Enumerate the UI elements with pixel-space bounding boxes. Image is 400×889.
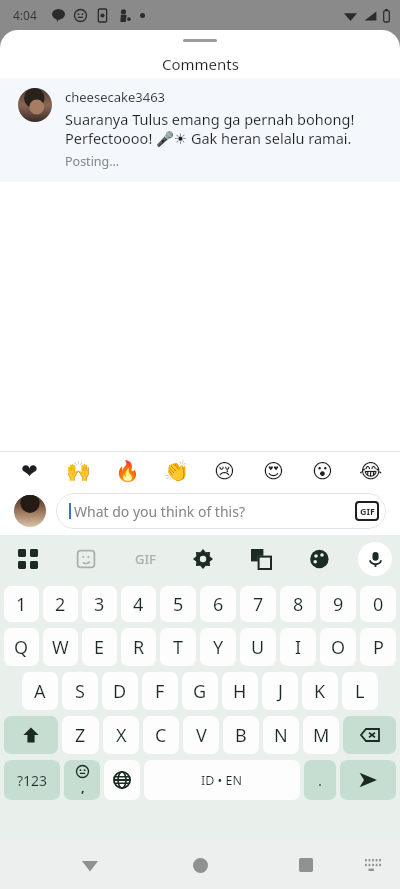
button[interactable]: Backspace xyxy=(343,716,396,754)
button[interactable]: Voice input xyxy=(358,542,392,576)
button[interactable]: P xyxy=(360,628,396,666)
staticText: ❤️ xyxy=(21,459,38,482)
staticText: D xyxy=(113,679,127,704)
button[interactable]: 2 xyxy=(43,586,78,622)
button[interactable]: O xyxy=(320,628,356,666)
button[interactable]: Apps xyxy=(8,539,48,579)
staticText: 7 xyxy=(253,592,264,617)
button[interactable]: 🔥 xyxy=(110,453,144,487)
staticText: F xyxy=(155,679,165,704)
button[interactable]: Emoji and comma xyxy=(64,760,100,800)
staticText: Y xyxy=(213,635,224,660)
button[interactable]: 6 xyxy=(200,586,236,622)
button[interactable]: Stickers xyxy=(66,539,106,579)
staticText: 🔥 xyxy=(115,459,140,482)
button[interactable]: Q xyxy=(4,628,39,666)
staticText: . xyxy=(318,770,323,790)
staticText: 2 xyxy=(55,592,66,617)
staticText: E xyxy=(94,635,105,660)
button[interactable]: Change language xyxy=(104,760,140,800)
button[interactable]: B xyxy=(223,716,259,754)
button[interactable]: F xyxy=(142,672,178,710)
staticText: 😂 xyxy=(359,459,383,482)
button[interactable]: Send xyxy=(340,760,396,800)
button[interactable]: 3 xyxy=(82,586,117,622)
staticText: U xyxy=(251,635,265,660)
button[interactable]: Home xyxy=(180,845,220,885)
button[interactable]: K xyxy=(302,672,338,710)
button[interactable]: C xyxy=(143,716,179,754)
staticText: Comments xyxy=(162,54,239,74)
button[interactable]: GIF xyxy=(125,539,165,579)
staticText: O xyxy=(331,635,346,660)
button[interactable]: Recents xyxy=(286,845,326,885)
staticText: 5 xyxy=(173,592,184,617)
button[interactable]: 0 xyxy=(360,586,396,622)
button[interactable]: GIF xyxy=(355,501,379,521)
staticText: M xyxy=(313,723,330,748)
button[interactable]: J xyxy=(262,672,298,710)
button[interactable]: U xyxy=(240,628,276,666)
staticText: W xyxy=(52,635,69,660)
button[interactable]: 😮 xyxy=(305,453,339,487)
button[interactable]: I xyxy=(280,628,316,666)
staticText: 4 xyxy=(133,592,144,617)
staticText: 6 xyxy=(213,592,224,617)
staticText: , xyxy=(81,778,85,796)
button[interactable]: 7 xyxy=(240,586,276,622)
button[interactable]: 😂 xyxy=(354,453,388,487)
button[interactable]: 😍 xyxy=(256,453,290,487)
button[interactable]: 🙌 xyxy=(61,453,95,487)
button[interactable]: 4 xyxy=(121,586,156,622)
button[interactable]: Shift xyxy=(4,716,58,754)
staticText: S xyxy=(75,679,85,704)
button[interactable]: ?123 xyxy=(4,760,60,800)
button[interactable]: 😢 xyxy=(207,453,241,487)
button[interactable]: Y xyxy=(200,628,236,666)
button[interactable]: Settings xyxy=(183,539,223,579)
button[interactable]: D xyxy=(102,672,138,710)
staticText: A xyxy=(34,679,46,704)
button[interactable]: Back xyxy=(70,845,110,885)
button[interactable]: Theme xyxy=(300,539,340,579)
button[interactable]: X xyxy=(103,716,139,754)
button[interactable]: S xyxy=(62,672,98,710)
button[interactable]: L xyxy=(342,672,378,710)
button[interactable]: 8 xyxy=(280,586,316,622)
button[interactable]: cheesecake3463 xyxy=(0,78,400,182)
button[interactable]: G xyxy=(182,672,218,710)
button[interactable]: ❤️ xyxy=(12,453,46,487)
button[interactable]: What do you think of this? xyxy=(56,493,386,529)
staticText: Z xyxy=(75,723,86,748)
button[interactable]: Z xyxy=(62,716,99,754)
button[interactable]: A xyxy=(22,672,58,710)
staticText: P xyxy=(373,635,384,660)
button[interactable]: 👏 xyxy=(159,453,193,487)
staticText: K xyxy=(314,679,326,704)
staticText: ?123 xyxy=(17,771,48,790)
button[interactable]: 9 xyxy=(320,586,356,622)
button[interactable]: 1 xyxy=(4,586,39,622)
button[interactable]: ID • EN xyxy=(144,760,300,800)
button[interactable]: R xyxy=(121,628,156,666)
staticText: Posting… xyxy=(65,153,120,170)
staticText: GIF xyxy=(135,550,156,568)
staticText: L xyxy=(355,679,365,704)
button[interactable]: T xyxy=(160,628,196,666)
button[interactable]: H xyxy=(222,672,258,710)
button[interactable]: M xyxy=(303,716,339,754)
staticText: 🙌 xyxy=(66,459,91,482)
button[interactable]: W xyxy=(43,628,78,666)
staticText: I xyxy=(295,635,302,660)
button[interactable]: V xyxy=(183,716,219,754)
staticText: H xyxy=(233,679,247,704)
button[interactable]: 5 xyxy=(160,586,196,622)
button[interactable]: Translate xyxy=(241,539,281,579)
button[interactable]: Switch keyboard xyxy=(358,850,388,880)
button[interactable]: . xyxy=(304,760,336,800)
button[interactable]: E xyxy=(82,628,117,666)
staticText: GIF xyxy=(360,505,375,517)
button[interactable]: N xyxy=(263,716,299,754)
staticText: 3 xyxy=(94,592,105,617)
staticText: 👏 xyxy=(164,459,189,482)
